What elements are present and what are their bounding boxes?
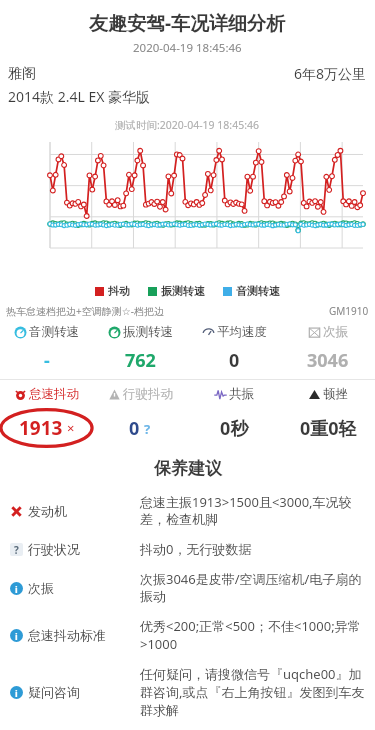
staticText: 热车怠速档把边+空调静测☆-档把边 (6, 304, 164, 318)
button[interactable]: metric icon (93, 386, 187, 402)
staticText: 音测转速 (236, 284, 280, 298)
staticText: i (15, 583, 18, 595)
button[interactable]: Info (0, 659, 375, 725)
other: metric icon (308, 326, 321, 339)
other: metric icon (308, 388, 321, 401)
other: Info (10, 686, 23, 699)
staticText: 2014款 2.4L EX 豪华版 (8, 87, 151, 106)
other: metric icon (202, 326, 215, 339)
staticText: 保养建议 (154, 458, 222, 479)
other: metric icon (108, 388, 121, 401)
button[interactable]: 1913 (0, 408, 93, 448)
staticText: 0 (129, 416, 140, 441)
staticText: 抖动 (108, 284, 130, 298)
staticText: 怠速抖动 (29, 386, 79, 402)
button[interactable]: metric icon (281, 324, 375, 340)
button[interactable]: metric icon (0, 324, 93, 340)
staticText: 疑问咨询 (28, 684, 80, 700)
staticText: 振测转速 (123, 324, 173, 340)
staticText: 2020-04-19 18:45:46 (133, 40, 242, 56)
button[interactable]: Info (0, 564, 375, 611)
staticText: 次振3046是皮带/空调压缩机/电子扇的振动 (140, 570, 365, 605)
staticText: 次振 (28, 580, 54, 596)
staticText: 0秒 (220, 416, 249, 441)
staticText: 抖动0，无行驶数据 (140, 540, 365, 558)
button[interactable]: Question (0, 534, 375, 564)
staticText: 次振 (323, 324, 348, 340)
staticText: 音测转速 (29, 324, 79, 340)
button[interactable]: metric icon (0, 386, 93, 402)
button[interactable]: metric icon (187, 386, 281, 402)
other: Info (10, 629, 23, 642)
staticText: 友趣安驾-车况详细分析 (89, 10, 286, 36)
staticText: ? (144, 420, 151, 438)
staticText: 怠速抖动标准 (28, 627, 106, 643)
other: metric icon (108, 326, 121, 339)
other: Error (10, 505, 23, 518)
staticText: GM1910 (329, 304, 369, 318)
button[interactable]: Info (0, 611, 375, 659)
staticText: - (44, 348, 50, 373)
staticText: 行驶状况 (28, 541, 80, 557)
staticText: 6年8万公里 (294, 64, 367, 83)
button[interactable]: metric icon (93, 324, 187, 340)
staticText: 发动机 (28, 503, 67, 519)
staticText: 优秀<200;正常<500；不佳<1000;异常>1000 (140, 617, 365, 653)
other: metric icon (14, 326, 27, 339)
staticText: 共振 (229, 386, 254, 402)
button[interactable]: 0 (93, 416, 187, 441)
staticText: 3046 (307, 348, 349, 373)
staticText: 任何疑问，请搜微信号『uqche00』加群咨询,或点『右上角按钮』发图到车友群求… (140, 665, 365, 719)
button[interactable]: metric icon (187, 324, 281, 340)
staticText: i (15, 630, 18, 642)
button[interactable]: metric icon (281, 386, 375, 402)
staticText: 雅阁 (8, 65, 36, 83)
staticText: 平均速度 (217, 324, 267, 340)
staticText: i (15, 687, 18, 699)
other: Question (10, 543, 23, 556)
staticText: × (67, 419, 75, 437)
other: metric icon (214, 388, 227, 401)
staticText: 振测转速 (161, 284, 205, 298)
staticText: 0重0轻 (300, 416, 357, 441)
staticText: 762 (125, 348, 156, 373)
staticText: 顿挫 (323, 386, 348, 402)
staticText: 测试时间:2020-04-19 18:45:46 (115, 118, 260, 132)
staticText: 1913 (19, 415, 63, 441)
other: Info (10, 582, 23, 595)
staticText: 行驶抖动 (123, 386, 173, 402)
other: metric icon (14, 388, 27, 401)
staticText: 0 (229, 348, 240, 373)
button[interactable]: Error (0, 487, 375, 534)
staticText: ? (14, 543, 19, 556)
staticText: 怠速主振1913>1500且<3000,车况较差，检查机脚 (140, 493, 365, 528)
